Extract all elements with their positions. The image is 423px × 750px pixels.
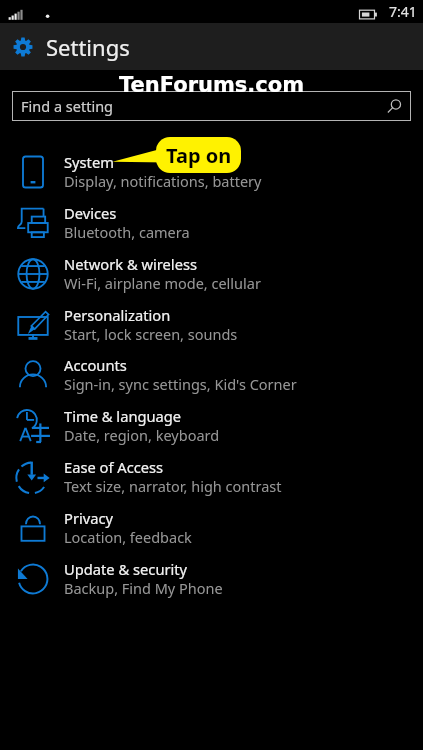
staticText: Display, notifications, battery bbox=[64, 171, 262, 191]
staticText: Ease of Access bbox=[64, 457, 164, 477]
staticText: System bbox=[64, 152, 114, 172]
other: Settings bbox=[13, 37, 33, 57]
staticText: Settings bbox=[46, 32, 130, 62]
staticText: Network & wireless bbox=[64, 254, 198, 274]
staticText: Personalization bbox=[64, 305, 171, 325]
staticText: Privacy bbox=[64, 508, 113, 528]
staticText: Tap on bbox=[166, 142, 232, 169]
staticText: Time & language bbox=[64, 406, 182, 426]
other: Search bbox=[386, 98, 402, 114]
staticText: Date, region, keyboard bbox=[64, 425, 220, 445]
staticText: Devices bbox=[64, 203, 117, 223]
staticText: Find a setting bbox=[21, 96, 114, 116]
staticText: Bluetooth, camera bbox=[64, 222, 190, 242]
button[interactable]: Devices bbox=[0, 197, 423, 248]
staticText: Location, feedback bbox=[64, 527, 192, 547]
staticText: Update & security bbox=[64, 559, 188, 579]
button[interactable]: Network & wireless bbox=[0, 248, 423, 299]
staticText: 7:41 bbox=[389, 2, 417, 21]
staticText: Text size, narrator, high contrast bbox=[64, 476, 282, 496]
staticText: TenForums.com bbox=[119, 73, 305, 97]
button[interactable]: Update & security bbox=[0, 553, 423, 604]
staticText: Wi-Fi, airplane mode, cellular bbox=[64, 273, 261, 293]
button[interactable]: Privacy bbox=[0, 502, 423, 553]
staticText: Sign-in, sync settings, Kid's Corner bbox=[64, 374, 297, 394]
staticText: Start, lock screen, sounds bbox=[64, 324, 238, 344]
button[interactable]: Time & language bbox=[0, 400, 423, 451]
button[interactable]: Accounts bbox=[0, 349, 423, 400]
button[interactable]: Personalization bbox=[0, 299, 423, 350]
button[interactable]: Find a setting bbox=[12, 91, 411, 121]
staticText: Accounts bbox=[64, 355, 127, 375]
button[interactable]: Ease of Access bbox=[0, 451, 423, 502]
staticText: Backup, Find My Phone bbox=[64, 578, 223, 598]
button[interactable]: System bbox=[0, 146, 423, 197]
button[interactable]: Settings bbox=[0, 23, 423, 70]
button[interactable]: Tap on bbox=[156, 137, 241, 173]
